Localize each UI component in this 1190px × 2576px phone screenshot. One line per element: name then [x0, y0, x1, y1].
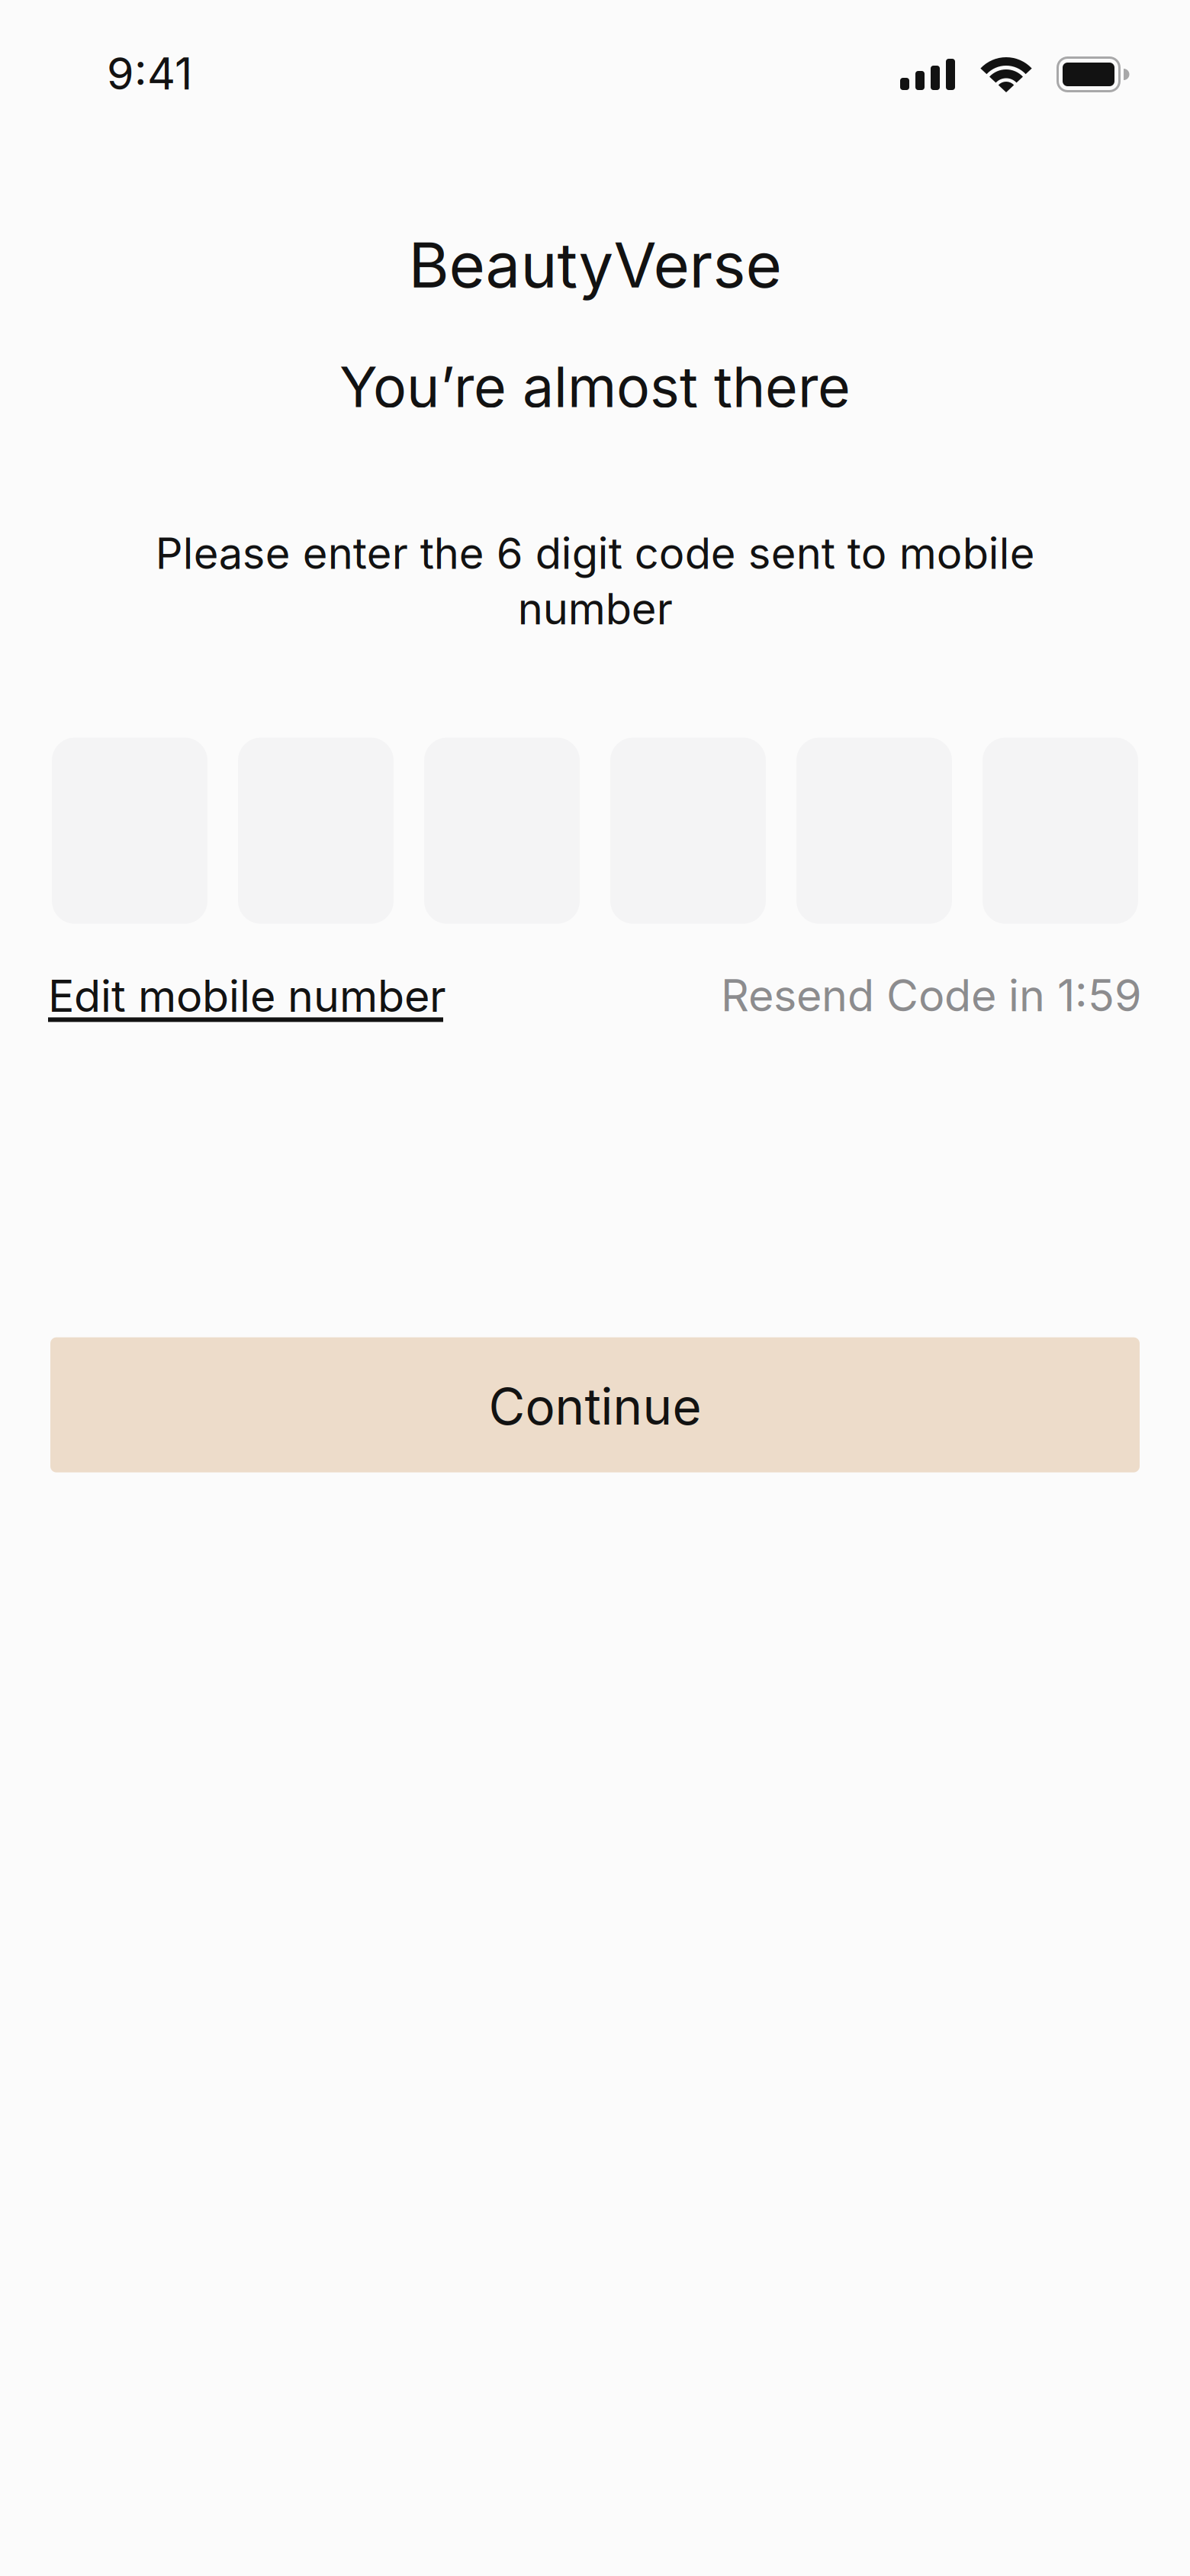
button[interactable]: Resend Code in 1:59: [721, 969, 1142, 1022]
staticText: You’re almost there: [339, 353, 851, 421]
staticText: Edit mobile number: [48, 969, 446, 1022]
staticText: BeautyVerse: [408, 227, 782, 302]
staticText: Continue: [489, 1376, 701, 1436]
staticText: Please enter the 6 digit code sent to mo…: [155, 527, 1035, 635]
staticText: Resend Code in 1:59: [721, 969, 1142, 1022]
button[interactable]: Continue: [50, 1337, 1140, 1472]
staticText: 9:41: [107, 47, 192, 100]
button[interactable]: Edit mobile number: [48, 969, 446, 1021]
